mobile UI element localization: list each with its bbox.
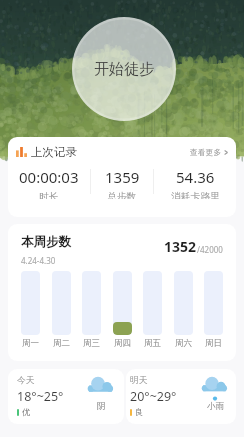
button[interactable]: [113, 271, 132, 335]
staticText: 18°~25°: [17, 388, 64, 405]
staticText: 明天: [130, 375, 148, 386]
staticText: 20°~29°: [130, 388, 177, 405]
staticText: /42000: [197, 244, 223, 255]
button[interactable]: 今天: [8, 369, 124, 424]
staticText: 优: [22, 407, 31, 417]
staticText: 上次记录: [31, 145, 77, 159]
staticText: 周日: [205, 338, 222, 349]
button[interactable]: 查看更多: [190, 147, 228, 157]
staticText: 今天: [17, 375, 35, 386]
staticText: 周四: [114, 338, 131, 349]
staticText: 54.36: [176, 167, 215, 187]
staticText: 4.24-4.30: [21, 255, 56, 266]
staticText: 消耗卡路里: [171, 191, 220, 199]
staticText: 周二: [53, 338, 70, 349]
staticText: 00:00:03: [19, 167, 79, 187]
staticText: 查看更多: [190, 147, 222, 157]
staticText: 小雨: [207, 401, 224, 412]
staticText: 周六: [175, 338, 192, 349]
staticText: 1352: [164, 237, 197, 256]
staticText: 1359: [105, 167, 140, 187]
button[interactable]: 开始徒步: [72, 17, 176, 121]
staticText: 阴: [97, 401, 106, 412]
staticText: 周五: [144, 338, 161, 349]
staticText: 时长: [39, 191, 59, 199]
staticText: 总步数: [107, 191, 137, 199]
button[interactable]: 明天: [126, 369, 236, 424]
staticText: 开始徒步: [94, 60, 154, 79]
staticText: 周一: [22, 338, 39, 349]
staticText: 周三: [83, 338, 100, 349]
staticText: 良: [135, 407, 144, 417]
staticText: 本周步数: [21, 234, 71, 250]
